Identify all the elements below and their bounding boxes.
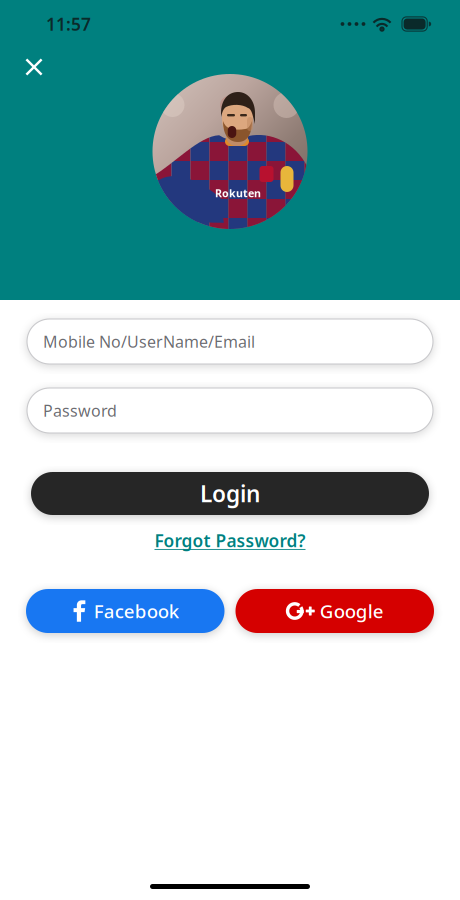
button[interactable]: Mobile No/UserName/Email bbox=[27, 319, 433, 364]
staticText: Mobile No/UserName/Email bbox=[43, 331, 255, 352]
button[interactable]: Login bbox=[31, 472, 429, 515]
staticText: Login bbox=[200, 478, 260, 508]
staticText: Password bbox=[43, 400, 117, 421]
button[interactable]: Forgot Password? bbox=[154, 529, 305, 552]
staticText: 11:57 bbox=[46, 12, 91, 35]
button[interactable]: Close bbox=[16, 48, 51, 83]
button[interactable]: Password bbox=[27, 388, 433, 433]
button[interactable]: Facebook bbox=[26, 589, 224, 633]
staticText: Rokuten bbox=[215, 186, 261, 200]
staticText: Forgot Password? bbox=[154, 529, 305, 552]
staticText: Google bbox=[320, 599, 384, 623]
button[interactable]: Google bbox=[235, 589, 434, 633]
staticText: Facebook bbox=[94, 599, 179, 623]
